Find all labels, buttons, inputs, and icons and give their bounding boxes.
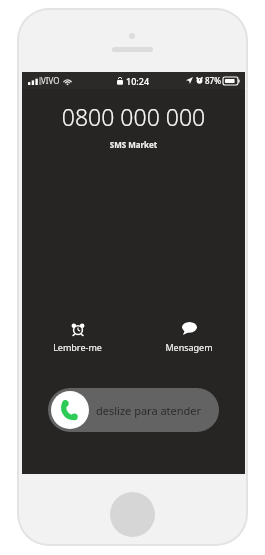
staticText: 87% — [205, 75, 221, 86]
button[interactable]: Lembre-me — [22, 318, 133, 355]
staticText: 0800 000 000 — [22, 101, 245, 132]
button[interactable]: Mensagem — [133, 318, 245, 355]
staticText: SMS Market — [22, 139, 245, 150]
staticText: VIVO — [41, 75, 60, 86]
staticText: deslize para atender — [96, 403, 202, 418]
staticText: Lembre-me — [53, 341, 102, 353]
staticText: Mensagem — [165, 341, 213, 353]
button[interactable]: deslize para atender — [48, 388, 219, 432]
button[interactable]: Atender chamada — [51, 391, 89, 429]
staticText: 10:24 — [126, 75, 150, 87]
